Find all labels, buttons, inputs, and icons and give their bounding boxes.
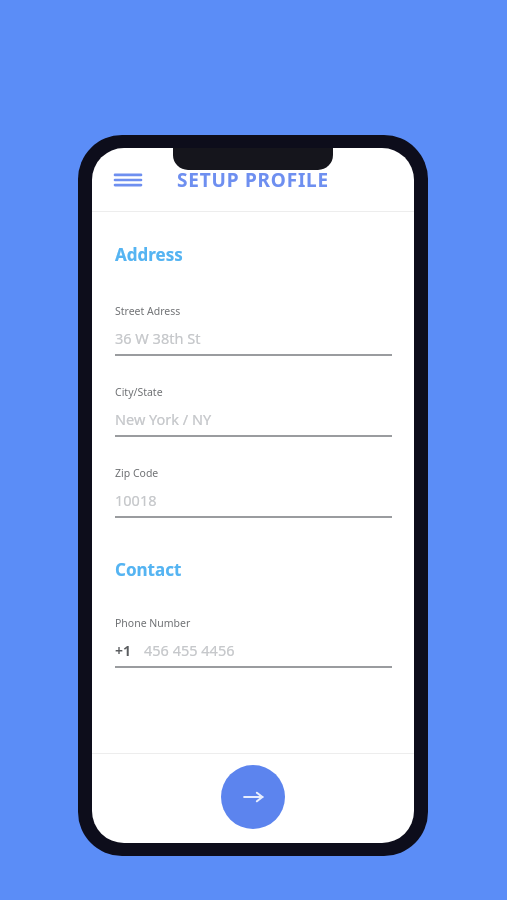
staticText: SETUP PROFILE bbox=[177, 167, 329, 193]
staticText: 36 W 38th St bbox=[115, 328, 201, 348]
button[interactable]: City/State bbox=[115, 385, 392, 437]
staticText: 10018 bbox=[115, 490, 157, 510]
staticText: 456 455 4456 bbox=[144, 640, 235, 660]
button[interactable]: Menu bbox=[111, 163, 145, 197]
staticText: Contact bbox=[115, 558, 182, 581]
staticText: Address bbox=[115, 243, 183, 266]
staticText: New York / NY bbox=[115, 409, 212, 429]
button[interactable]: Phone Number bbox=[115, 616, 392, 668]
staticText: Zip Code bbox=[115, 466, 159, 480]
staticText: Street Adress bbox=[115, 304, 181, 318]
button[interactable]: Zip Code bbox=[115, 466, 392, 518]
button[interactable]: Street Adress bbox=[115, 304, 392, 356]
staticText: +1 bbox=[115, 641, 132, 660]
staticText: City/State bbox=[115, 385, 163, 399]
staticText: Phone Number bbox=[115, 616, 191, 630]
button[interactable]: Next bbox=[221, 765, 285, 829]
